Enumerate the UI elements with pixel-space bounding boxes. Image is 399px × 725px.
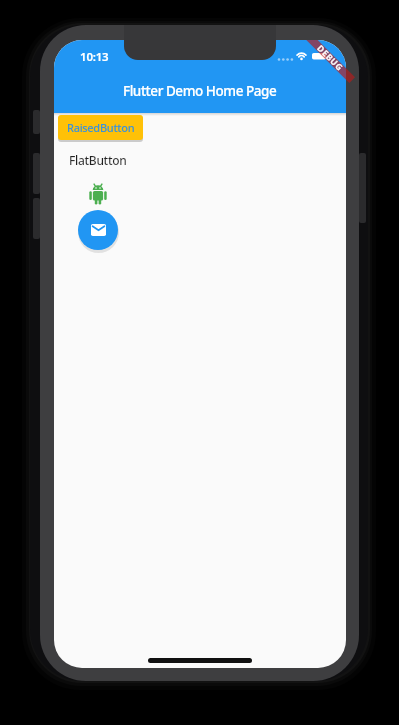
- button[interactable]: FlatButton: [54, 146, 143, 174]
- staticText: FlatButton: [69, 152, 127, 168]
- staticText: 10:13: [80, 49, 109, 65]
- button[interactable]: RaisedButton: [58, 115, 143, 140]
- staticText: DEBUG: [314, 42, 346, 74]
- staticText: RaisedButton: [67, 120, 135, 135]
- button[interactable]: [78, 210, 118, 250]
- staticText: Flutter Demo Home Page: [123, 82, 277, 100]
